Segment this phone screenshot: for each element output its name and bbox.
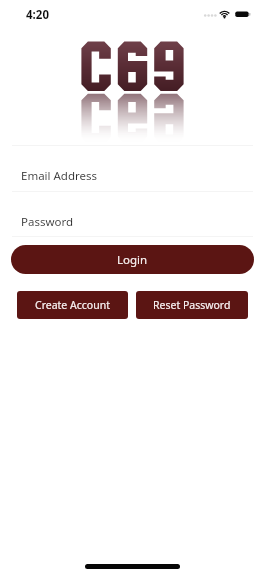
button[interactable]: Reset Password: [136, 291, 248, 319]
button[interactable]: Login: [11, 245, 254, 274]
staticText: Create Account: [35, 298, 110, 312]
button[interactable]: Create Account: [17, 291, 128, 319]
staticText: 4:20: [26, 7, 49, 23]
button[interactable]: Email Address: [0, 146, 265, 191]
staticText: Password: [21, 214, 74, 230]
button[interactable]: Password: [0, 192, 265, 236]
staticText: Login: [117, 252, 148, 268]
staticText: Reset Password: [153, 298, 231, 312]
staticText: Email Address: [21, 168, 98, 184]
